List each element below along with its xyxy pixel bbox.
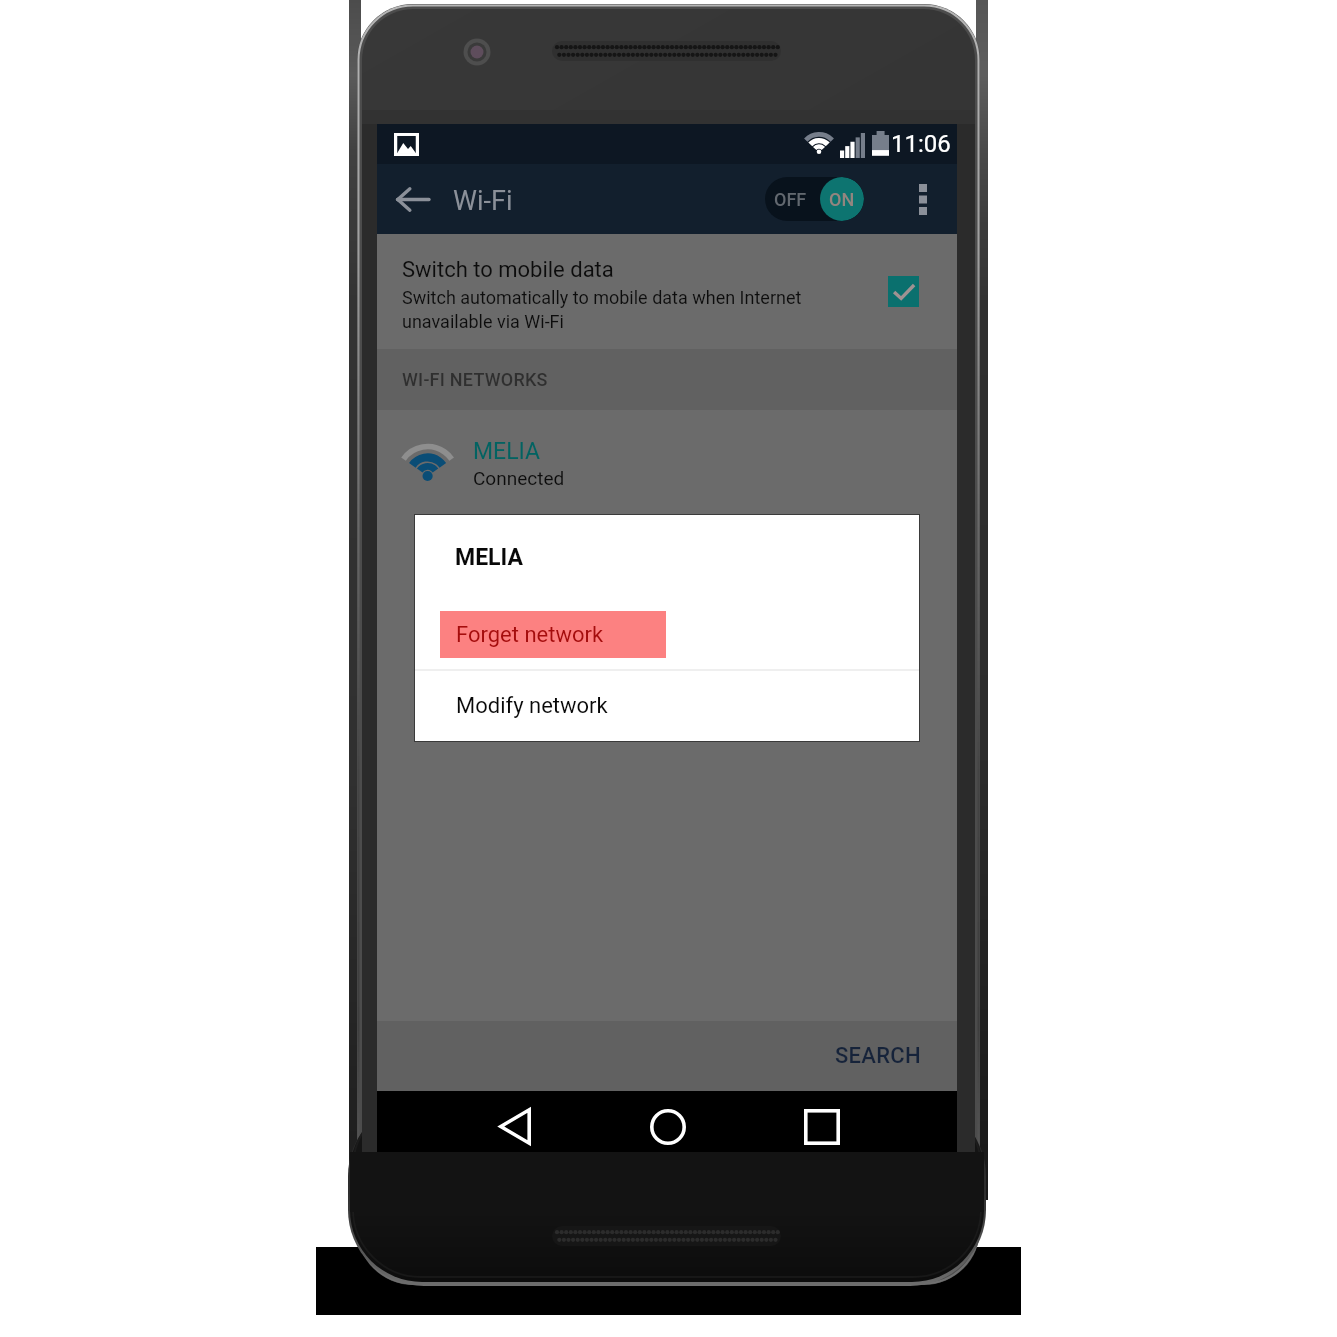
button[interactable]: Switch to mobile data checkbox: [888, 276, 919, 307]
button[interactable]: SEARCH: [821, 1033, 935, 1079]
button[interactable]: Switch to mobile data: [377, 234, 957, 349]
staticText: WI-FI NETWORKS: [402, 369, 548, 390]
button[interactable]: Back: [384, 171, 440, 227]
button[interactable]: More options: [899, 171, 947, 227]
staticText: MELIA: [473, 438, 541, 465]
staticText: Switch automatically to mobile data when…: [402, 287, 802, 332]
staticText: Modify network: [456, 693, 608, 719]
staticText: Switch to mobile data: [402, 257, 614, 283]
button[interactable]: Modify network: [415, 671, 919, 741]
button[interactable]: MELIA: [377, 410, 957, 525]
button[interactable]: Forget network: [415, 592, 919, 669]
button[interactable]: Recent apps: [782, 1099, 862, 1154]
staticText: OFF: [774, 189, 807, 210]
staticText: MELIA: [455, 544, 523, 571]
staticText: Connected: [473, 467, 565, 489]
staticText: ON: [829, 189, 855, 210]
button[interactable]: Back: [475, 1099, 555, 1154]
button[interactable]: Home: [628, 1099, 708, 1154]
staticText: 11:06: [891, 130, 951, 158]
button[interactable]: Wi-Fi on off switch: [765, 177, 864, 221]
staticText: SEARCH: [835, 1043, 921, 1069]
staticText: Forget network: [456, 622, 604, 648]
staticText: Wi-Fi: [453, 185, 513, 217]
